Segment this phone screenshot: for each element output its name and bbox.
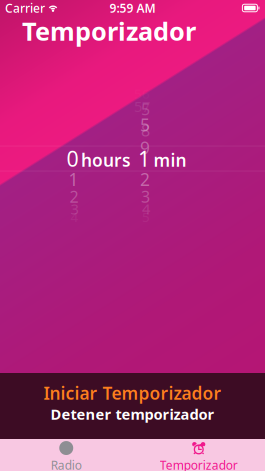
button[interactable]: Temporizador [132, 441, 265, 471]
staticText: 0 [67, 144, 79, 173]
button[interactable]: Radio [0, 441, 132, 471]
staticText: Carrier [5, 0, 45, 16]
staticText: 2 [70, 186, 79, 207]
staticText: 9:59 AM [109, 0, 155, 16]
staticText: 58 [141, 98, 150, 141]
staticText: Temporizador [160, 457, 238, 471]
staticText: hours [81, 148, 131, 171]
button[interactable]: Detener temporizador [0, 404, 265, 424]
staticText: 3 [71, 199, 79, 218]
staticText: 1 [138, 144, 150, 173]
staticText: 4 [142, 199, 150, 218]
staticText: min [153, 148, 186, 171]
staticText: 2 [140, 168, 150, 191]
staticText: 1 [69, 168, 79, 191]
staticText: Iniciar Temporizador [43, 381, 221, 404]
staticText: Temporizador [22, 14, 196, 48]
staticText: 5 [142, 208, 150, 226]
staticText: 4 [71, 208, 79, 226]
staticText: 3 [141, 186, 150, 207]
button[interactable]: Iniciar Temporizador [0, 382, 265, 404]
staticText: Detener temporizador [50, 404, 214, 424]
staticText: 56 [134, 85, 150, 102]
staticText: Radio [51, 457, 82, 471]
staticText: 57 [134, 97, 150, 116]
staticText: 59 [140, 113, 150, 159]
